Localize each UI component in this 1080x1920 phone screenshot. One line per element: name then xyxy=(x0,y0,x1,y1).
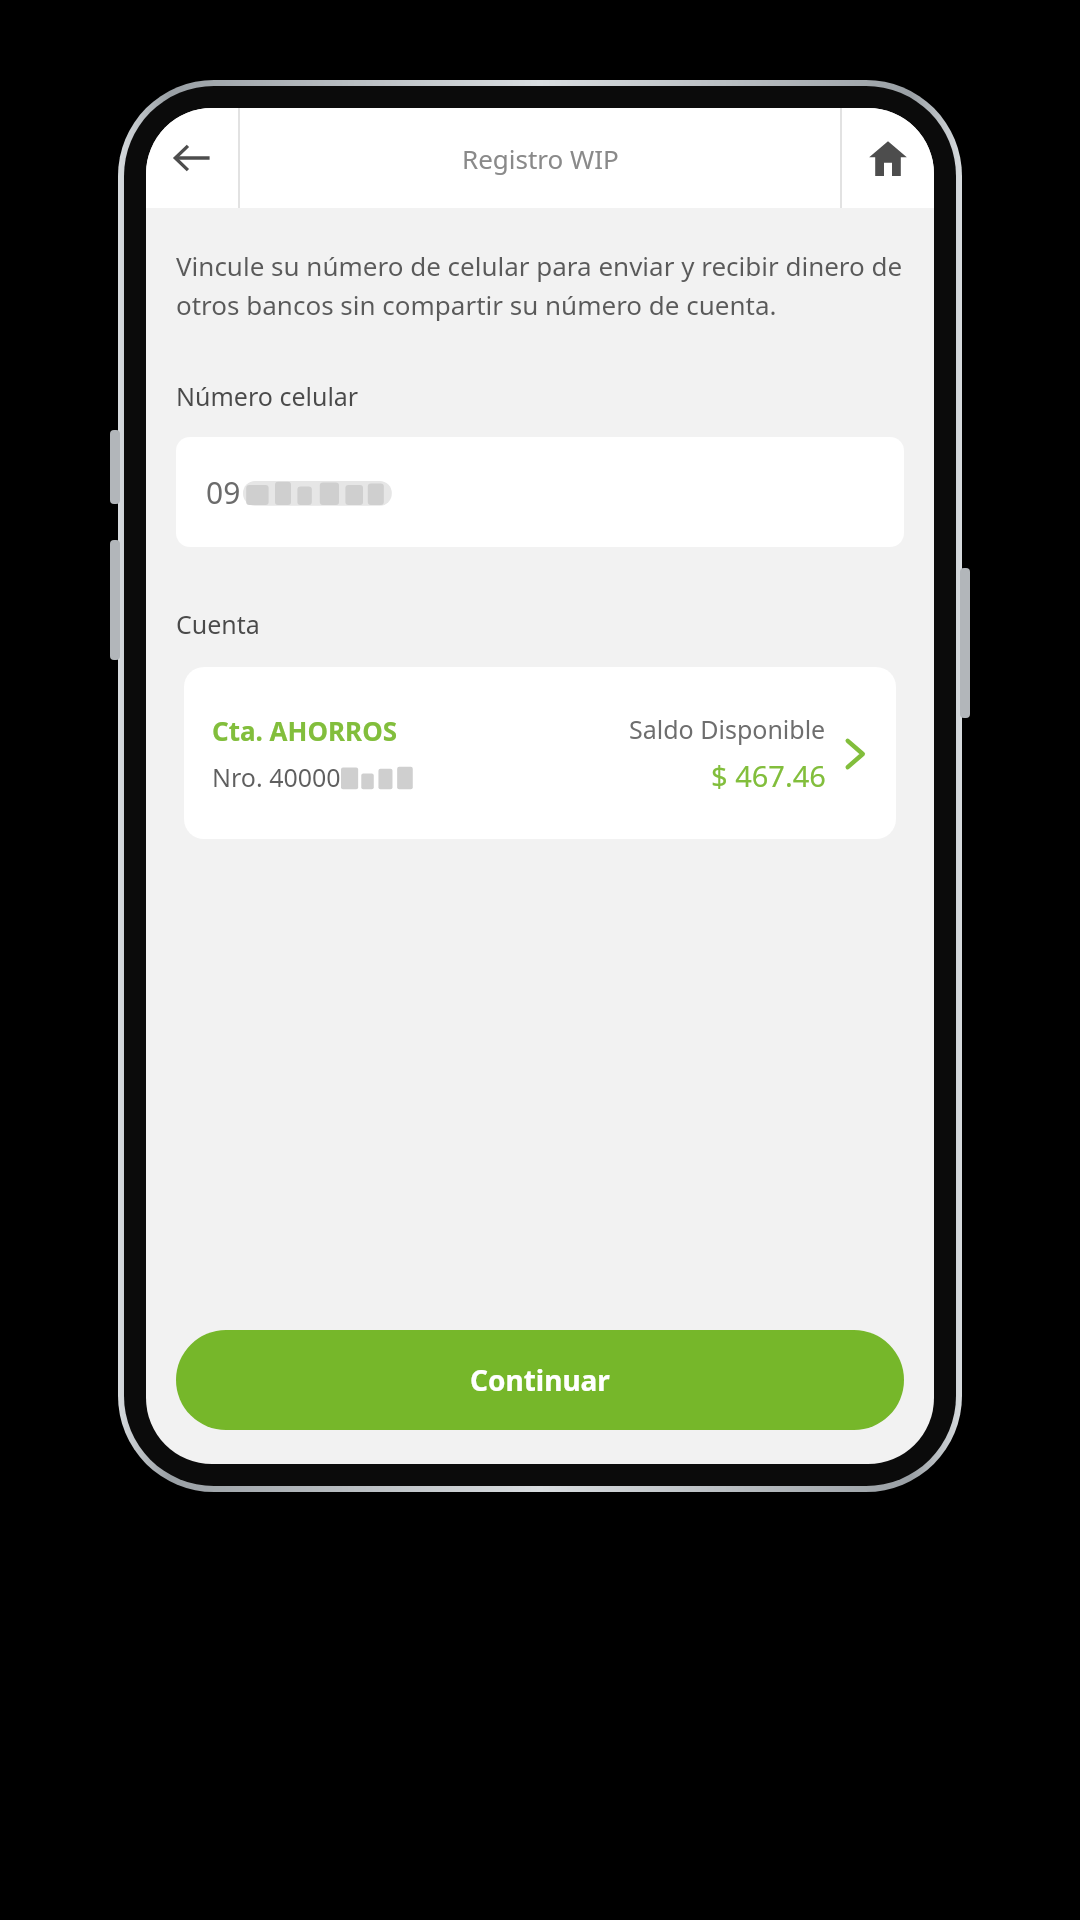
staticText: Número celular xyxy=(176,379,359,413)
staticText: Registro WIP xyxy=(462,141,619,176)
staticText: Vincule su número de celular para enviar… xyxy=(176,248,904,323)
staticText: Saldo Disponible xyxy=(629,712,826,746)
staticText: 09 xyxy=(206,472,241,513)
staticText: $ 467.46 xyxy=(711,756,826,795)
staticText: Cta. AHORROS xyxy=(212,713,398,748)
staticText: Continuar xyxy=(470,1361,610,1399)
staticText: Nro. 40000 xyxy=(212,760,341,794)
button[interactable]: Continuar xyxy=(176,1330,904,1430)
button[interactable]: Home xyxy=(842,108,934,208)
button[interactable]: 09 xyxy=(176,437,904,547)
button[interactable]: Cta. AHORROS xyxy=(184,667,896,839)
button[interactable]: Back xyxy=(146,108,238,208)
staticText: Cuenta xyxy=(176,607,260,641)
